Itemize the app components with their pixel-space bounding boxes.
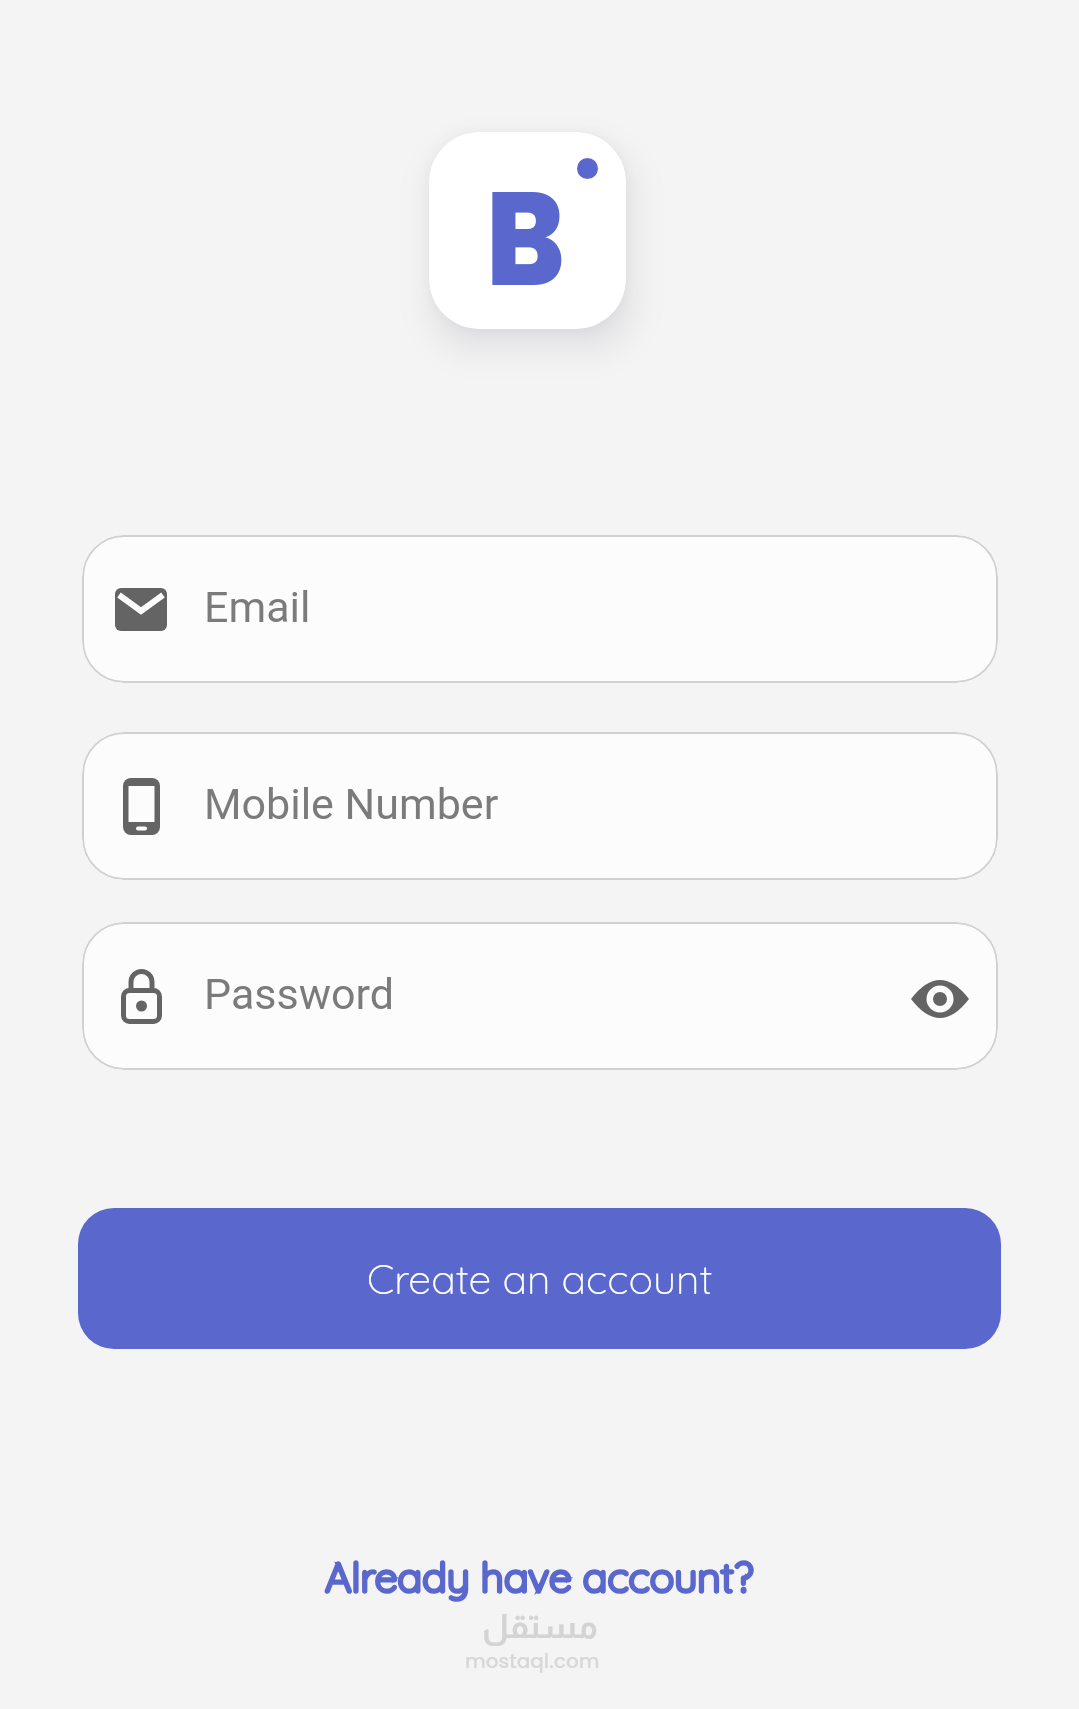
staticText: Create an account bbox=[367, 1253, 713, 1304]
staticText: مستقل bbox=[482, 1608, 598, 1645]
button[interactable] bbox=[911, 976, 969, 1016]
button[interactable]: Create an account bbox=[78, 1208, 1001, 1349]
staticText: Already have account? bbox=[325, 1551, 754, 1602]
staticText: mostaql.com bbox=[465, 1647, 600, 1675]
button[interactable]: Password bbox=[82, 922, 998, 1070]
staticText: Mobile Number bbox=[204, 779, 499, 829]
staticText: Password bbox=[204, 969, 394, 1019]
button[interactable]: Already have account? bbox=[325, 1551, 754, 1602]
staticText: B bbox=[486, 147, 565, 329]
button[interactable]: Mobile Number bbox=[82, 732, 998, 880]
button[interactable]: Email bbox=[82, 535, 998, 683]
staticText: Email bbox=[204, 582, 311, 632]
staticText: Already have account? bbox=[325, 1551, 754, 1602]
